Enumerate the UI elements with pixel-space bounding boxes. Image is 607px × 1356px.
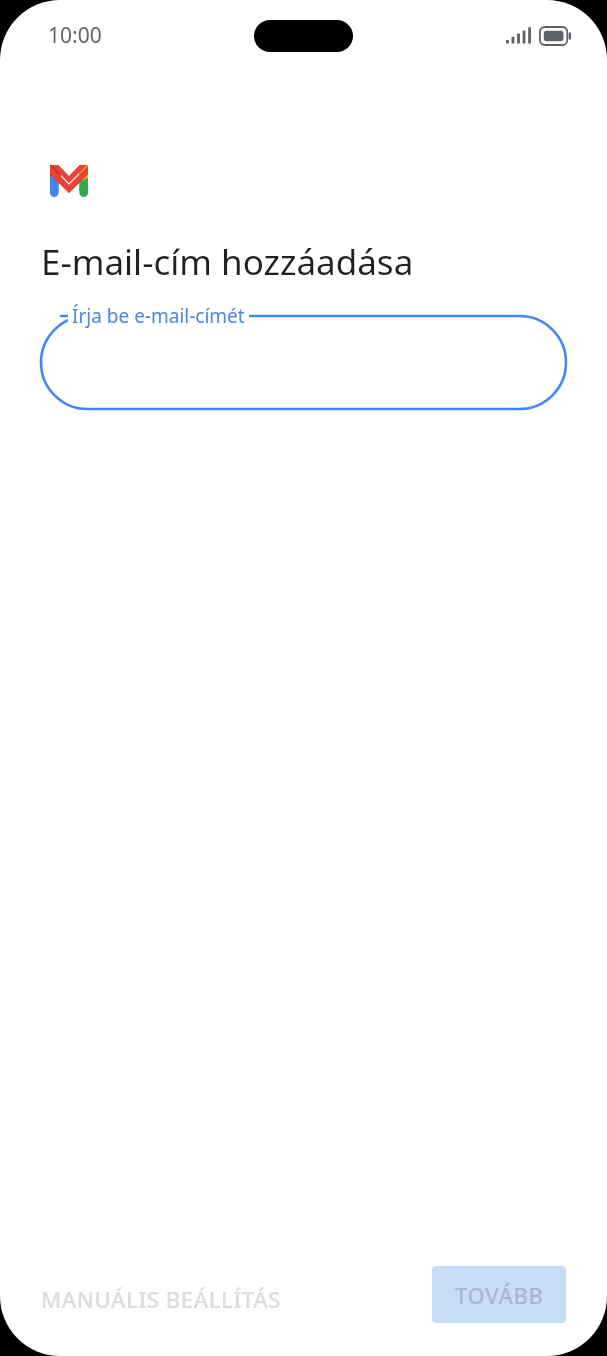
staticText: 10:00 bbox=[48, 21, 102, 50]
button[interactable]: Írja be e-mail-címét bbox=[41, 310, 566, 420]
staticText: TOVÁBB bbox=[455, 1280, 544, 1310]
button[interactable]: MANUÁLIS BEÁLLÍTÁS bbox=[20, 1268, 302, 1330]
staticText: Írja be e-mail-címét bbox=[72, 303, 245, 329]
staticText: E-mail-cím hozzáadása bbox=[41, 238, 414, 286]
button[interactable]: TOVÁBB bbox=[432, 1266, 566, 1323]
staticText: MANUÁLIS BEÁLLÍTÁS bbox=[41, 1284, 281, 1314]
